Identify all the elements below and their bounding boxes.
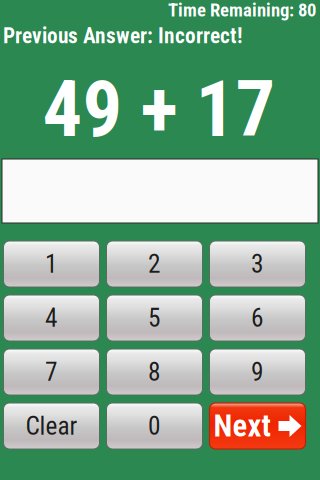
button[interactable]: 2 xyxy=(106,241,202,287)
button[interactable]: 6 xyxy=(209,295,305,341)
button[interactable]: Clear xyxy=(3,403,99,449)
staticText: 0 xyxy=(148,411,161,441)
staticText: 9 xyxy=(251,357,264,387)
button[interactable]: 4 xyxy=(3,295,99,341)
staticText: 3 xyxy=(251,249,264,279)
button[interactable]: 9 xyxy=(209,349,305,395)
button[interactable]: 0 xyxy=(106,403,202,449)
button[interactable]: 7 xyxy=(3,349,99,395)
staticText: Clear xyxy=(25,411,77,441)
staticText: Previous Answer: Incorrect! xyxy=(3,23,243,48)
button[interactable]: 5 xyxy=(106,295,202,341)
staticText: 6 xyxy=(251,303,264,333)
button[interactable]: Next xyxy=(209,403,305,449)
button[interactable]: 3 xyxy=(209,241,305,287)
staticText: 7 xyxy=(45,357,58,387)
staticText: 49 + 17 xyxy=(42,63,275,155)
staticText: 2 xyxy=(148,249,161,279)
staticText: 5 xyxy=(148,303,161,333)
staticText: Time Remaining: 80 xyxy=(168,0,316,21)
button[interactable]: 8 xyxy=(106,349,202,395)
staticText: 8 xyxy=(148,357,161,387)
button[interactable]: 1 xyxy=(3,241,99,287)
staticText: 1 xyxy=(45,249,58,279)
staticText: Next xyxy=(213,408,270,444)
staticText: 4 xyxy=(45,303,58,333)
